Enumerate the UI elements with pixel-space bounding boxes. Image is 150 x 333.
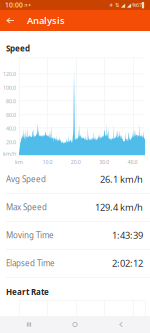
staticText: Max Speed — [6, 202, 47, 212]
button[interactable]: Back — [104, 316, 138, 333]
button[interactable]: Home — [58, 316, 92, 333]
staticText: 30.0 — [99, 158, 109, 165]
staticText: ✈ ⇅ ◢ ◢ %67▌ — [109, 1, 146, 9]
button[interactable]: Moving Time — [0, 221, 150, 249]
staticText: 2:02:12 — [112, 257, 143, 269]
staticText: 40.0 — [6, 125, 16, 132]
staticText: 20.0 — [71, 158, 81, 165]
button[interactable]: Avg Speed — [0, 165, 150, 193]
staticText: km — [15, 158, 23, 165]
staticText: Avg Speed — [6, 174, 46, 184]
staticText: 80.0 — [6, 98, 16, 105]
staticText: Moving Time — [6, 230, 54, 240]
staticText: 60.0 — [6, 111, 16, 118]
staticText: 120.0 — [3, 70, 16, 77]
staticText: 26.1 km/h — [100, 173, 143, 185]
staticText: 20.0 — [6, 139, 16, 146]
staticText: Heart Rate — [6, 286, 49, 297]
staticText: 10:00 — [5, 1, 23, 9]
staticText: 1:43:39 — [112, 229, 143, 241]
button[interactable]: Max Speed — [0, 193, 150, 221]
staticText: 10.0 — [42, 158, 52, 165]
staticText: 40.0 — [128, 158, 138, 165]
staticText: Elapsed Time — [6, 258, 55, 268]
staticText: Speed — [6, 43, 30, 54]
staticText: Analysis — [27, 14, 65, 27]
button[interactable]: Back — [0, 10, 21, 31]
staticText: 129.4 km/h — [95, 201, 143, 213]
staticText: km/h — [3, 150, 16, 157]
staticText: ◔ ✦ — [23, 3, 31, 7]
button[interactable]: Recent apps — [12, 316, 46, 333]
staticText: 100.0 — [3, 84, 16, 91]
button[interactable]: Elapsed Time — [0, 249, 150, 277]
